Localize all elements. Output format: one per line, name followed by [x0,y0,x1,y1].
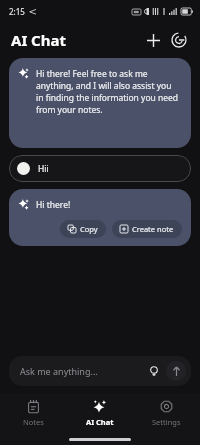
button[interactable]: Hii [9,155,191,182]
staticText: Ask me anything... [20,365,145,377]
staticText: Copy [80,224,98,234]
staticText: Notes [23,417,44,427]
button[interactable]: Copy [60,220,106,238]
button[interactable]: Settings [133,393,200,433]
staticText: 2:15 [9,6,25,17]
button[interactable]: Hi there! Feel free to ask me anything, … [9,58,191,148]
staticText: AI Chat [11,30,66,50]
button[interactable]: AI Chat [66,393,133,433]
staticText: Hii [38,163,49,175]
button[interactable]: Voice input [145,362,163,380]
staticText: Hi there! [36,199,71,211]
button[interactable]: Create note [112,220,182,238]
button[interactable]: New chat [140,27,166,53]
staticText: Create note [132,224,174,234]
button[interactable]: Ask me anything... [9,356,191,386]
button[interactable]: Hi there! [9,189,191,246]
staticText: Hi there! Feel free to ask me anything, … [36,68,181,116]
button[interactable]: Chat history [166,27,192,53]
staticText: Settings [152,417,181,427]
button[interactable]: Send [166,361,186,381]
staticText: AI Chat [86,417,114,427]
button[interactable]: Notes [0,393,66,433]
